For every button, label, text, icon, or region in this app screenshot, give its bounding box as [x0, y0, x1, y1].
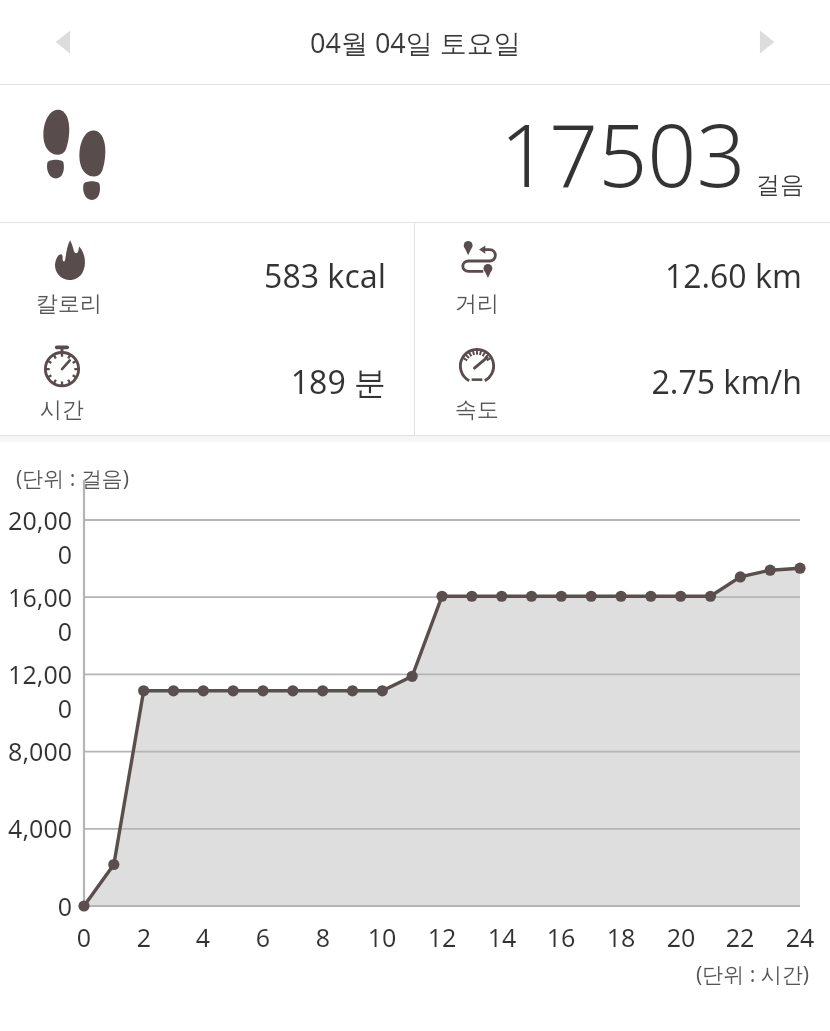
button[interactable]: 거리	[415, 223, 830, 329]
staticText: 속도	[455, 396, 499, 424]
staticText: 12.60 km	[664, 254, 802, 298]
staticText: 8,000	[0, 734, 72, 768]
staticText: 6	[233, 920, 293, 954]
staticText: 16	[531, 920, 591, 954]
staticText: 14	[472, 920, 532, 954]
staticText: 거리	[455, 290, 499, 318]
staticText: 2.75 km/h	[651, 360, 802, 404]
staticText: 4,000	[0, 811, 72, 845]
button[interactable]: 칼로리	[0, 223, 414, 329]
staticText: 20,000	[0, 503, 72, 571]
staticText: 20	[651, 920, 711, 954]
staticText: 4	[173, 920, 233, 954]
staticText: 583 kcal	[264, 254, 386, 298]
staticText: 칼로리	[36, 290, 102, 318]
staticText: 17503	[500, 95, 746, 212]
staticText: 2	[114, 920, 174, 954]
staticText: 189 분	[290, 360, 386, 404]
staticText: 10	[352, 920, 412, 954]
staticText: 12	[412, 920, 472, 954]
staticText: 0	[54, 920, 114, 954]
button[interactable]: Next day	[728, 6, 804, 78]
staticText: 24	[770, 920, 830, 954]
button[interactable]: Previous day	[26, 6, 102, 78]
staticText: 12,000	[0, 657, 72, 725]
staticText: (단위 : 시간)	[696, 960, 810, 989]
staticText: (단위 : 걸음)	[16, 464, 130, 493]
button[interactable]: 시간	[0, 329, 414, 435]
staticText: 걸음	[756, 170, 804, 200]
staticText: 16,000	[0, 580, 72, 648]
button[interactable]: 속도	[415, 329, 830, 435]
staticText: 8	[293, 920, 353, 954]
button[interactable]: 17503	[0, 85, 830, 222]
staticText: 시간	[40, 396, 84, 424]
staticText: 18	[591, 920, 651, 954]
staticText: 04월 04일 토요일	[310, 24, 521, 61]
staticText: 0	[0, 889, 72, 923]
staticText: 22	[710, 920, 770, 954]
